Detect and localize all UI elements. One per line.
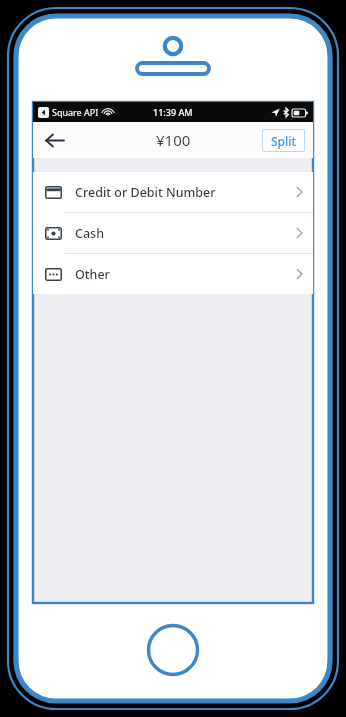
staticText: ¥100 xyxy=(156,130,191,150)
staticText: Other xyxy=(75,266,296,283)
button[interactable]: Cash xyxy=(33,213,313,254)
staticText: Square API xyxy=(52,106,99,118)
button[interactable]: Credit or Debit Number xyxy=(33,172,313,213)
staticText: Split xyxy=(271,133,297,149)
staticText: Credit or Debit Number xyxy=(75,184,296,201)
button[interactable]: Split xyxy=(262,129,305,152)
button[interactable]: Back xyxy=(38,124,70,156)
staticText: Cash xyxy=(75,225,296,242)
staticText: 11:39 AM xyxy=(153,106,193,118)
button[interactable]: Other xyxy=(33,254,313,294)
